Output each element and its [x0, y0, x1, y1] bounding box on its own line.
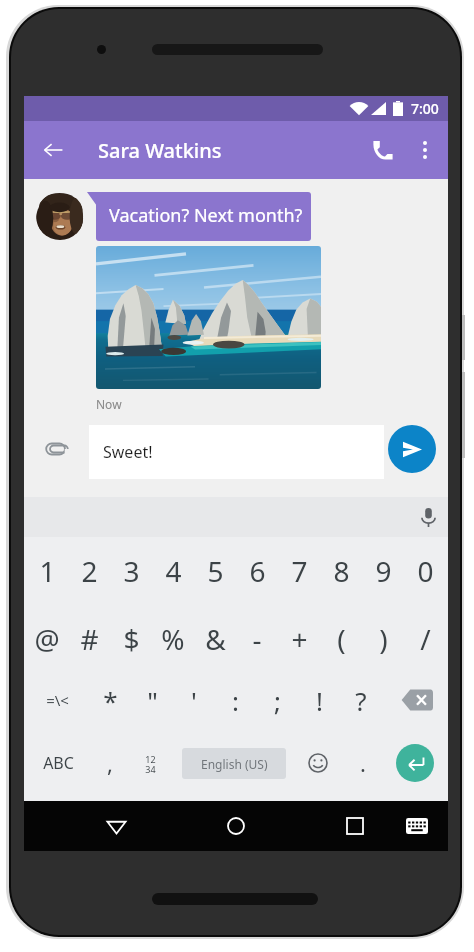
button[interactable]: 6: [237, 541, 277, 601]
staticText: =\<: [46, 690, 69, 710]
button[interactable]: Enter: [396, 744, 434, 782]
button[interactable]: :: [215, 670, 255, 730]
button[interactable]: .: [343, 733, 383, 793]
staticText: ): [379, 620, 388, 658]
button[interactable]: $: [111, 609, 151, 669]
button[interactable]: 3: [111, 541, 151, 601]
button[interactable]: Sweet!: [89, 425, 384, 479]
button[interactable]: 9: [363, 541, 403, 601]
button[interactable]: 12 34: [136, 751, 164, 777]
staticText: 6: [249, 552, 266, 590]
staticText: ?: [355, 683, 367, 718]
button[interactable]: ABC: [38, 733, 78, 793]
button[interactable]: Send: [388, 425, 436, 473]
staticText: 12 34: [145, 753, 156, 775]
staticText: -: [252, 620, 262, 658]
staticText: ': [191, 683, 197, 718]
button[interactable]: ): [363, 609, 403, 669]
button[interactable]: Voice input: [413, 502, 443, 532]
button[interactable]: [96, 246, 321, 389]
button[interactable]: (: [321, 609, 361, 669]
staticText: #: [80, 620, 99, 658]
staticText: Vacation? Next month?: [109, 203, 303, 228]
button[interactable]: *: [90, 670, 130, 730]
button[interactable]: 7: [279, 541, 319, 601]
staticText: 0: [417, 552, 434, 590]
button[interactable]: Call: [365, 132, 401, 168]
button[interactable]: Switch keyboard: [397, 806, 437, 846]
staticText: ": [147, 683, 158, 718]
button[interactable]: 8: [321, 541, 361, 601]
button[interactable]: #: [69, 609, 109, 669]
staticText: Sara Watkins: [98, 137, 222, 164]
staticText: 5: [207, 552, 224, 590]
button[interactable]: Home: [216, 806, 256, 846]
button[interactable]: @: [27, 609, 67, 669]
staticText: ;: [274, 683, 281, 718]
staticText: (: [337, 620, 346, 658]
button[interactable]: Emoji: [305, 750, 331, 776]
staticText: Now: [96, 396, 122, 412]
staticText: /: [420, 620, 431, 658]
button[interactable]: &: [195, 609, 235, 669]
staticText: :: [232, 683, 239, 718]
staticText: 8: [333, 552, 350, 590]
button[interactable]: More options: [408, 133, 442, 167]
staticText: 3: [123, 552, 140, 590]
button[interactable]: 4: [153, 541, 193, 601]
button[interactable]: /: [405, 609, 445, 669]
staticText: Sweet!: [103, 441, 153, 463]
staticText: @: [34, 620, 60, 658]
button[interactable]: Back: [96, 806, 136, 846]
button[interactable]: 5: [195, 541, 235, 601]
button[interactable]: Attach: [39, 431, 75, 467]
button[interactable]: 2: [69, 541, 109, 601]
button[interactable]: -: [237, 609, 277, 669]
staticText: 1: [39, 552, 56, 590]
staticText: 7: [291, 552, 308, 590]
staticText: %: [161, 620, 185, 658]
button[interactable]: ,: [90, 733, 130, 793]
staticText: *: [103, 683, 118, 718]
button[interactable]: English (US): [182, 748, 286, 779]
staticText: 9: [375, 552, 392, 590]
button[interactable]: ": [132, 670, 172, 730]
staticText: 2: [81, 552, 98, 590]
staticText: !: [316, 683, 323, 718]
staticText: English (US): [201, 756, 268, 772]
staticText: &: [205, 620, 226, 658]
button[interactable]: ;: [257, 670, 297, 730]
button[interactable]: Recents: [335, 806, 375, 846]
staticText: .: [360, 748, 366, 778]
staticText: 4: [165, 552, 182, 590]
button[interactable]: !: [299, 670, 339, 730]
button[interactable]: ?: [341, 670, 381, 730]
staticText: 7:00: [411, 99, 439, 118]
button[interactable]: 0: [405, 541, 445, 601]
button[interactable]: =\<: [37, 670, 77, 730]
staticText: ,: [107, 748, 113, 778]
button[interactable]: Back: [35, 132, 71, 168]
staticText: +: [291, 620, 308, 658]
button[interactable]: 1: [27, 541, 67, 601]
button[interactable]: Vacation? Next month?: [96, 192, 311, 241]
button[interactable]: +: [279, 609, 319, 669]
button[interactable]: %: [153, 609, 193, 669]
button[interactable]: ': [174, 670, 214, 730]
staticText: ABC: [43, 752, 74, 774]
button[interactable]: Backspace: [401, 688, 433, 712]
staticText: $: [123, 620, 140, 658]
